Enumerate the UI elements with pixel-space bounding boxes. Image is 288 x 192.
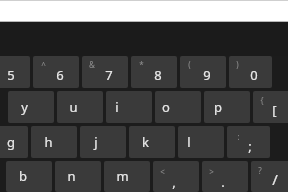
staticText: > [209,166,214,177]
button[interactable]: ) [229,56,272,88]
staticText: ? [258,165,262,176]
staticText: 7 [105,66,113,84]
button[interactable]: u [57,91,103,123]
staticText: & [89,59,95,70]
staticText: k [142,133,149,151]
staticText: 8 [154,66,162,84]
staticText: . [221,173,225,191]
staticText: m [116,167,129,185]
staticText: o [162,98,170,116]
button[interactable]: i [106,91,152,123]
button[interactable]: * [131,56,177,88]
button[interactable]: : [227,126,270,158]
button[interactable]: m [104,161,150,192]
staticText: 6 [56,66,64,84]
staticText: [ [272,101,277,119]
button[interactable]: b [6,161,52,192]
button[interactable]: n [55,161,101,192]
button[interactable]: l [178,126,224,158]
button[interactable]: > [202,161,248,192]
staticText: n [67,167,76,185]
staticText: 9 [203,66,211,84]
staticText: ^ [41,59,46,70]
staticText: , [172,173,176,191]
button[interactable]: j [80,126,126,158]
button[interactable]: ? [251,161,288,192]
staticText: * [139,59,144,70]
button[interactable]: & [82,56,128,88]
staticText: 5 [7,66,15,84]
staticText: l [187,133,191,151]
button[interactable]: < [153,161,199,192]
button[interactable]: % [0,56,30,88]
staticText: < [160,166,165,177]
button[interactable]: ( [180,56,226,88]
staticText: g [7,133,15,151]
staticText: u [69,98,78,116]
button[interactable]: o [155,91,201,123]
button[interactable]: h [31,126,77,158]
staticText: { [260,95,264,106]
staticText: j [94,133,98,151]
staticText: 0 [250,66,258,84]
button[interactable]: { [253,91,288,123]
staticText: p [214,98,222,116]
staticText: h [44,133,53,151]
button[interactable]: k [129,126,175,158]
staticText: i [115,98,119,116]
button[interactable]: p [204,91,250,123]
staticText: ; [248,137,252,155]
staticText: / [272,169,278,189]
button[interactable]: y [8,91,54,123]
staticText: b [19,167,27,185]
button[interactable]: g [0,126,28,158]
button[interactable]: ^ [33,56,79,88]
staticText: : [237,131,240,142]
staticText: ( [188,59,191,70]
staticText: ) [236,59,239,70]
staticText: y [21,98,28,116]
